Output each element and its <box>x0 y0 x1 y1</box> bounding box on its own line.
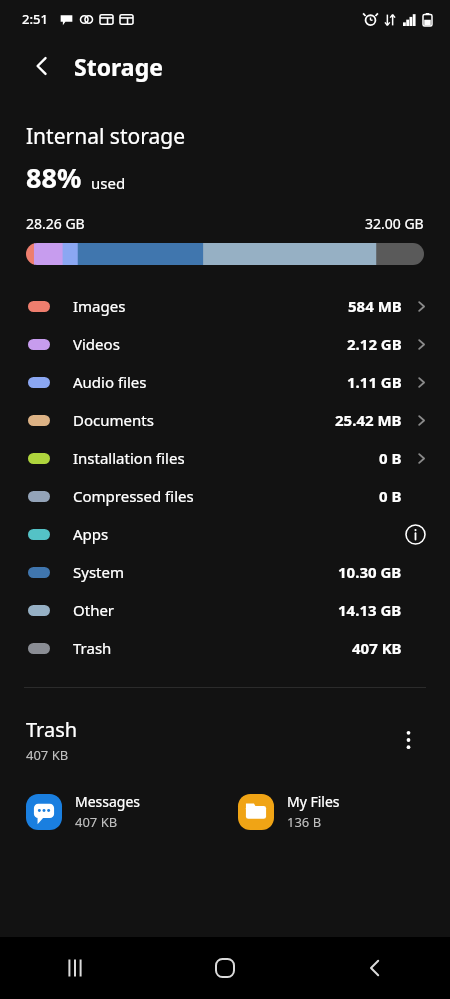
staticText: Trash <box>26 716 78 743</box>
staticText: 407 KB <box>352 638 402 658</box>
button[interactable]: Trash <box>0 629 450 667</box>
staticText: Trash <box>73 638 112 658</box>
staticText: 2.12 GB <box>347 334 402 354</box>
button[interactable]: My Files <box>238 792 450 831</box>
button[interactable]: Videos <box>0 325 450 363</box>
staticText: 2:51 <box>22 10 48 28</box>
other: Apps info <box>402 521 428 547</box>
button[interactable]: Audio files <box>0 363 450 401</box>
staticText: 584 MB <box>348 296 402 316</box>
staticText: 0 B <box>379 486 402 506</box>
staticText: 14.13 GB <box>338 600 402 620</box>
staticText: Videos <box>73 334 120 354</box>
button[interactable]: System <box>0 553 450 591</box>
staticText: Audio files <box>73 372 147 392</box>
staticText: Other <box>73 600 115 620</box>
staticText: 0 B <box>379 448 402 468</box>
button[interactable]: Apps <box>0 515 450 553</box>
staticText: 10.30 GB <box>338 562 402 582</box>
staticText: Apps <box>73 524 109 544</box>
button[interactable]: Recent apps <box>0 937 150 999</box>
staticText: System <box>73 562 124 582</box>
button[interactable]: Documents <box>0 401 450 439</box>
button[interactable]: Messages <box>26 792 238 831</box>
button[interactable]: More options <box>388 720 428 760</box>
staticText: Messages <box>75 792 141 811</box>
staticText: Installation files <box>73 448 185 468</box>
button[interactable]: Back <box>22 46 62 86</box>
staticText: 136 B <box>287 813 322 831</box>
staticText: 1.11 GB <box>347 372 402 392</box>
staticText: 28.26 GB <box>26 214 85 233</box>
button[interactable]: Installation files <box>0 439 450 477</box>
staticText: My Files <box>287 792 340 811</box>
button[interactable]: Compressed files <box>0 477 450 515</box>
staticText: 407 KB <box>26 746 69 764</box>
button[interactable]: Images <box>0 287 450 325</box>
button[interactable]: Home <box>150 937 300 999</box>
staticText: used <box>91 173 126 193</box>
staticText: Internal storage <box>26 122 185 151</box>
staticText: 407 KB <box>75 813 118 831</box>
staticText: Storage <box>74 51 163 82</box>
staticText: Compressed files <box>73 486 194 506</box>
staticText: 25.42 MB <box>335 410 402 430</box>
staticText: 32.00 GB <box>365 214 424 233</box>
staticText: Images <box>73 296 126 316</box>
staticText: Documents <box>73 410 154 430</box>
button[interactable]: Other <box>0 591 450 629</box>
button[interactable]: Back <box>300 937 450 999</box>
staticText: 88% <box>26 159 82 196</box>
